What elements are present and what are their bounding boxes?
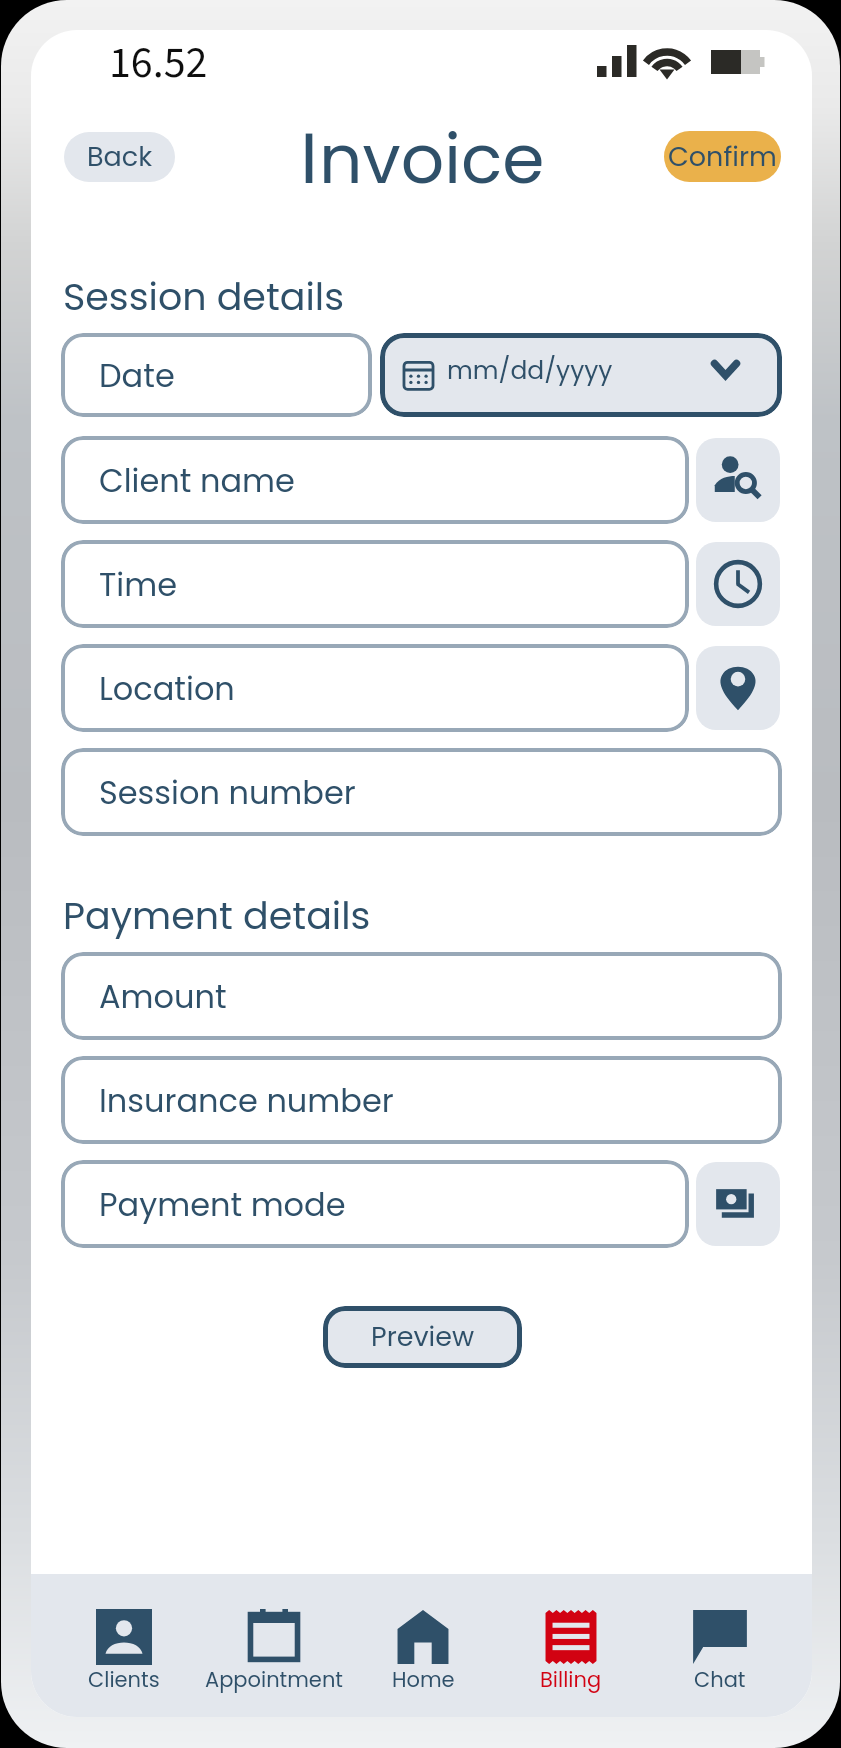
staticText: Time [99, 562, 177, 607]
button[interactable]: Pick location [696, 646, 780, 730]
staticText: 16.52 [109, 32, 208, 95]
button[interactable]: Payment mode [696, 1162, 780, 1246]
button[interactable]: Clients [50, 1574, 198, 1717]
staticText: Back [87, 138, 153, 176]
button[interactable]: Chat [646, 1574, 794, 1717]
staticText: Session number [99, 770, 356, 815]
button[interactable]: Insurance number [61, 1056, 782, 1144]
staticText: Chat [694, 1665, 746, 1694]
button[interactable]: Home [349, 1574, 497, 1717]
staticText: Amount [99, 974, 227, 1019]
button[interactable]: Date [61, 333, 372, 417]
button[interactable]: Appointment [200, 1574, 348, 1717]
button[interactable]: Location [61, 644, 689, 732]
staticText: Confirm [668, 138, 777, 176]
staticText: Invoice [299, 112, 545, 207]
button[interactable]: Billing [497, 1574, 645, 1717]
staticText: Clients [88, 1665, 160, 1694]
button[interactable]: Search client [696, 438, 780, 522]
button[interactable]: Amount [61, 952, 782, 1040]
button[interactable]: Pick time [696, 542, 780, 626]
button[interactable]: mm/dd/yyyy [380, 333, 782, 417]
button[interactable]: Back [64, 132, 175, 182]
staticText: Insurance number [99, 1078, 394, 1123]
staticText: Preview [371, 1318, 475, 1356]
staticText: Billing [540, 1665, 602, 1694]
button[interactable]: Client name [61, 436, 689, 524]
staticText: Home [392, 1665, 455, 1694]
button[interactable]: Payment mode [61, 1160, 689, 1248]
button[interactable]: Time [61, 540, 689, 628]
staticText: Payment mode [99, 1182, 346, 1227]
staticText: Client name [99, 458, 295, 503]
button[interactable]: Session number [61, 748, 782, 836]
button[interactable]: Confirm [664, 131, 781, 182]
button[interactable]: Preview [323, 1306, 522, 1368]
staticText: Session details [63, 270, 344, 323]
staticText: mm/dd/yyyy [447, 353, 613, 388]
staticText: Date [99, 353, 175, 398]
staticText: Payment details [63, 889, 371, 942]
staticText: Appointment [205, 1665, 343, 1694]
staticText: Location [99, 666, 235, 711]
